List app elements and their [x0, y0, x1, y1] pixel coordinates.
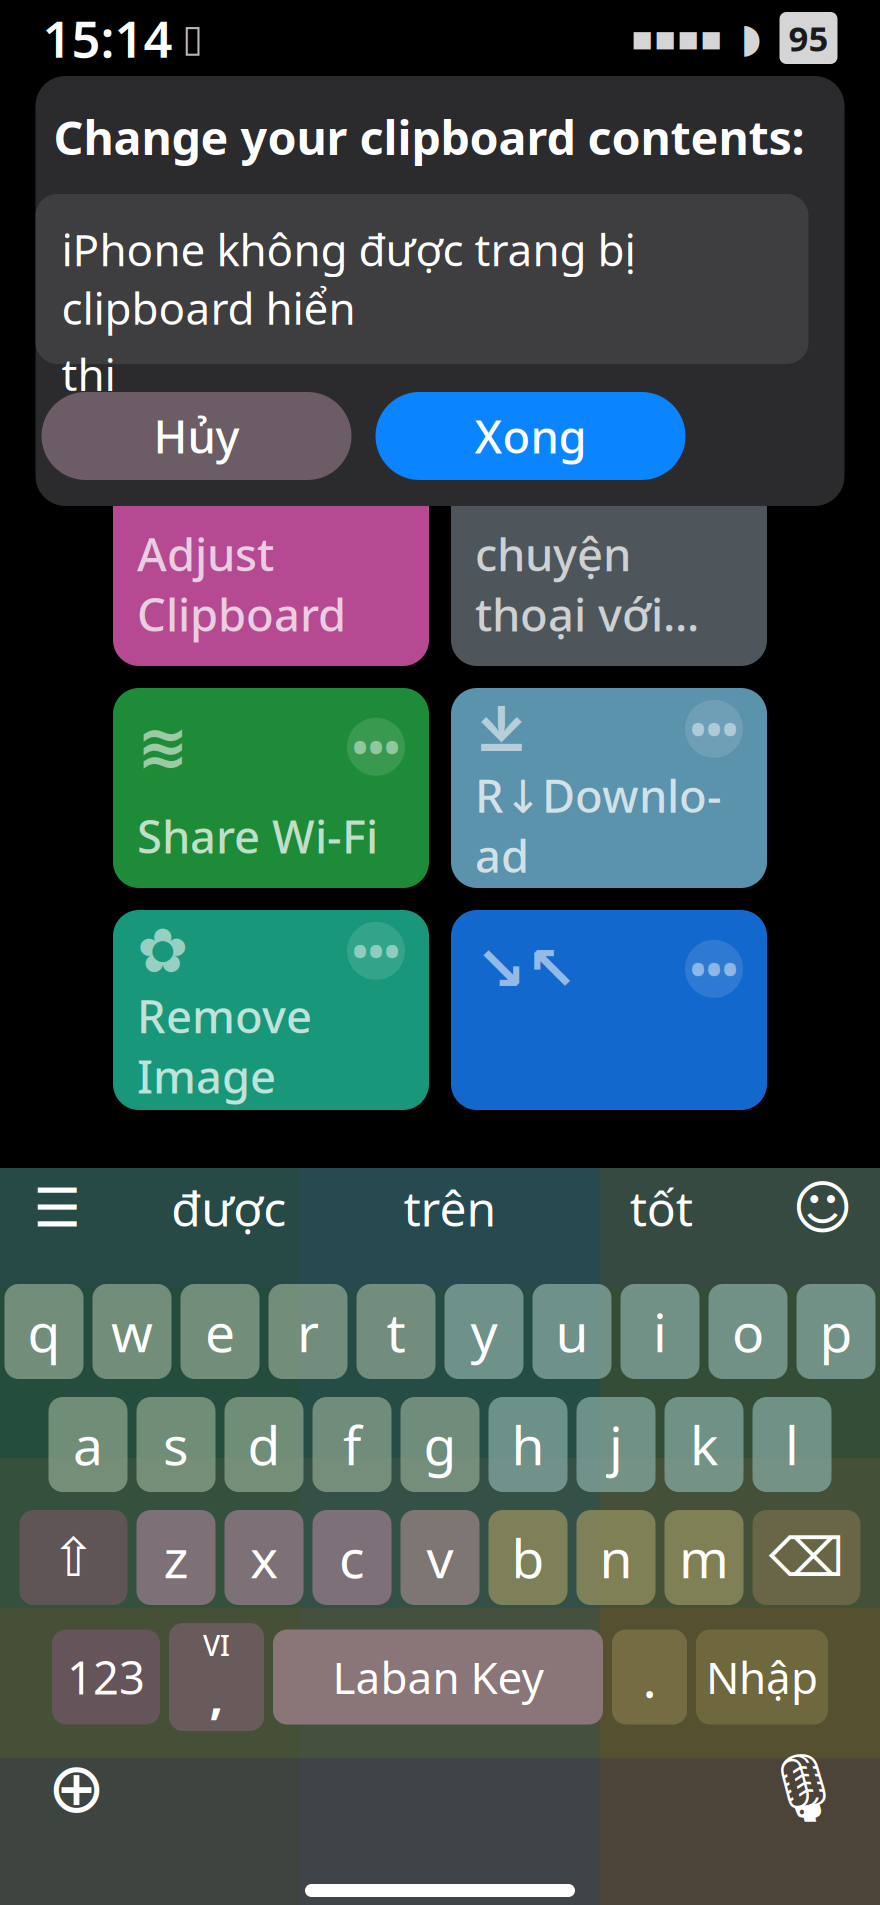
staticText: được — [171, 1176, 286, 1240]
staticText: Adjust Clipboard — [137, 524, 346, 644]
staticText: R↓Download — [475, 765, 722, 885]
staticText: ⇧ — [51, 1527, 96, 1588]
staticText: ••• — [352, 718, 400, 775]
staticText: Laban Key — [332, 1648, 543, 1706]
staticText: Remove Image — [137, 986, 312, 1106]
button[interactable]: o — [708, 1284, 787, 1379]
staticText: w — [111, 1296, 153, 1367]
button[interactable]: Hủy — [41, 392, 351, 480]
button[interactable]: Laban Key — [273, 1629, 603, 1724]
staticText: ⊕ — [47, 1749, 105, 1827]
button[interactable]: . — [612, 1629, 687, 1724]
staticText: Hủy — [153, 406, 239, 466]
staticText: Xong — [474, 406, 586, 466]
staticText: b — [511, 1522, 544, 1593]
button[interactable]: ↘↖ — [451, 910, 767, 1110]
button[interactable]: 123 — [52, 1629, 160, 1724]
button[interactable]: ✿ — [113, 910, 429, 1110]
staticText: ↘↖ — [475, 934, 577, 1004]
staticText: ▯ — [182, 17, 203, 59]
button[interactable]: j — [576, 1397, 655, 1492]
staticText: h — [511, 1409, 544, 1480]
button[interactable]: h — [488, 1397, 567, 1492]
button[interactable]: ⤓ — [451, 688, 767, 888]
staticText: ⤓ — [475, 693, 528, 765]
button[interactable]: s — [136, 1397, 215, 1492]
button[interactable]: Xong — [375, 392, 685, 480]
staticText: , — [209, 1664, 223, 1727]
staticText: x — [250, 1522, 278, 1593]
staticText: ☺ — [792, 1175, 853, 1241]
button[interactable]: z — [136, 1510, 215, 1605]
button[interactable]: l — [752, 1397, 831, 1492]
button[interactable]: x — [224, 1510, 303, 1605]
staticText: o — [732, 1296, 764, 1367]
button[interactable]: Nhập — [696, 1629, 828, 1724]
button[interactable]: Emoji — [777, 1173, 867, 1243]
button[interactable]: ≋ — [113, 688, 429, 888]
button[interactable]: v — [400, 1510, 479, 1605]
staticText: ••• — [690, 940, 738, 997]
staticText: ⌫ — [769, 1527, 844, 1588]
button[interactable]: r — [268, 1284, 347, 1379]
staticText: v — [426, 1522, 453, 1593]
staticText: z — [163, 1522, 188, 1593]
button[interactable]: m — [664, 1510, 743, 1605]
staticText: ✿ — [137, 916, 188, 986]
button[interactable]: Dictation — [753, 1743, 853, 1833]
button[interactable]: chuyện thoại với... — [451, 466, 767, 666]
staticText: ▪▪▪▪ — [630, 18, 722, 58]
button[interactable]: i — [620, 1284, 699, 1379]
staticText: r — [297, 1296, 319, 1367]
button[interactable]: b — [488, 1510, 567, 1605]
button[interactable]: c — [312, 1510, 391, 1605]
staticText: i — [653, 1296, 667, 1367]
button[interactable]: w — [92, 1284, 171, 1379]
button[interactable]: Keyboard menu — [12, 1173, 102, 1243]
staticText: ≋ — [137, 712, 188, 782]
button[interactable]: e — [180, 1284, 259, 1379]
button[interactable]: a — [48, 1397, 127, 1492]
button[interactable]: Adjust Clipboard — [113, 466, 429, 666]
button[interactable]: ⌫ — [752, 1510, 860, 1605]
button[interactable]: VI — [169, 1623, 264, 1731]
button[interactable]: n — [576, 1510, 655, 1605]
staticText: t — [386, 1296, 405, 1367]
button[interactable]: được — [134, 1173, 324, 1243]
staticText: e — [205, 1296, 235, 1367]
staticText: ••• — [352, 922, 400, 979]
button[interactable]: Next keyboard — [26, 1743, 126, 1833]
button[interactable]: trên — [355, 1173, 545, 1243]
staticText: m — [679, 1522, 729, 1593]
button[interactable]: q — [4, 1284, 83, 1379]
staticText: u — [555, 1296, 588, 1367]
button[interactable]: t — [356, 1284, 435, 1379]
staticText: thị — [61, 345, 115, 403]
staticText: Share Wi-Fi — [137, 806, 378, 866]
button[interactable]: u — [532, 1284, 611, 1379]
button[interactable]: d — [224, 1397, 303, 1492]
staticText: chuyện thoại với... — [475, 524, 699, 644]
staticText: 15:14 — [42, 4, 172, 72]
staticText: . — [642, 1642, 656, 1712]
button[interactable]: ⇧ — [19, 1510, 127, 1605]
staticText: Change your clipboard contents: — [53, 106, 804, 168]
staticText: k — [690, 1409, 718, 1480]
button[interactable]: y — [444, 1284, 523, 1379]
staticText: tốt — [630, 1176, 693, 1240]
button[interactable]: p — [796, 1284, 875, 1379]
staticText: a — [73, 1409, 103, 1480]
staticText: ☰ — [33, 1178, 81, 1238]
staticText: ••• — [690, 700, 738, 757]
staticText: trên — [403, 1176, 496, 1240]
staticText: n — [599, 1522, 632, 1593]
button[interactable]: tốt — [576, 1173, 746, 1243]
staticText: j — [609, 1409, 623, 1480]
staticText: f — [343, 1409, 361, 1480]
button[interactable]: k — [664, 1397, 743, 1492]
button[interactable]: g — [400, 1397, 479, 1492]
staticText: ◗ — [740, 15, 761, 61]
button[interactable]: f — [312, 1397, 391, 1492]
staticText: VI — [203, 1626, 230, 1664]
staticText: d — [247, 1409, 280, 1480]
